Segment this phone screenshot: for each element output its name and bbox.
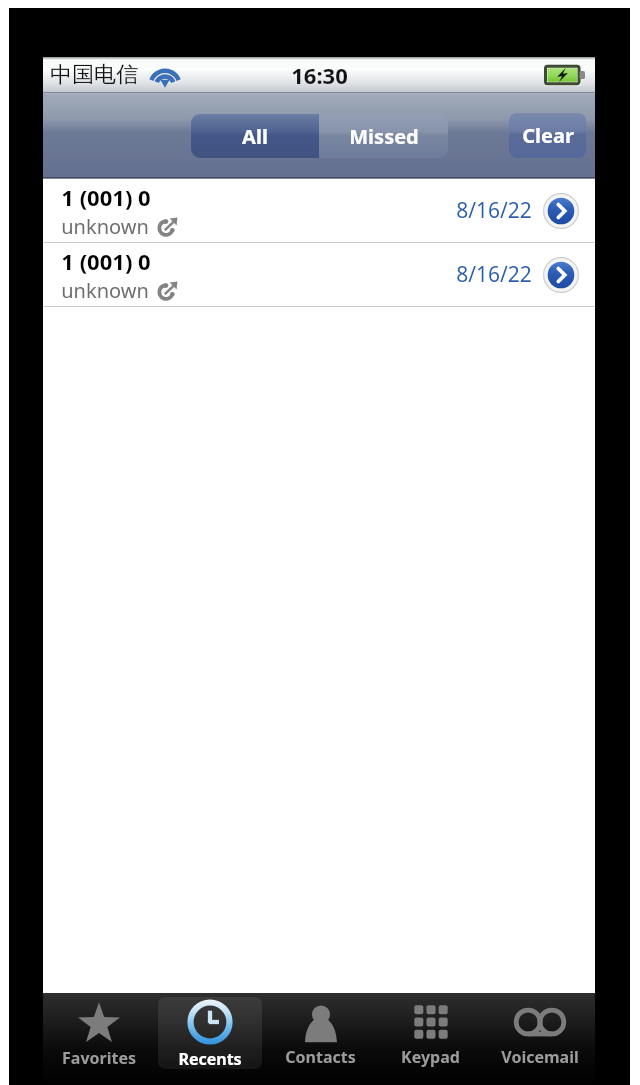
staticText: unknown [61,213,149,240]
button[interactable]: Favorites [43,993,154,1085]
button[interactable]: Clear [509,113,586,158]
button[interactable]: 1 (001) 0 [43,243,595,307]
staticText: 16:30 [291,60,348,90]
staticText: 1 (001) 0 [61,246,151,276]
button[interactable]: Missed [319,114,448,158]
button[interactable]: All [191,114,319,158]
staticText: 8/16/22 [456,196,532,225]
staticText: unknown [61,277,149,304]
button[interactable]: Recents [154,993,265,1085]
staticText: Recents [178,1048,242,1070]
button[interactable]: More info [543,257,579,293]
button[interactable]: Keypad [375,993,485,1085]
staticText: Voicemail [501,1046,579,1068]
button[interactable]: More info [543,193,579,229]
staticText: All [242,123,268,150]
button[interactable]: Contacts [265,993,375,1085]
staticText: Favorites [62,1047,136,1069]
staticText: Keypad [401,1046,460,1068]
staticText: Clear [522,122,574,149]
staticText: Missed [349,123,419,150]
staticText: 中国电信 [50,61,138,89]
staticText: 8/16/22 [456,260,532,289]
button[interactable]: Voicemail [485,993,595,1085]
button[interactable]: 1 (001) 0 [43,179,595,243]
staticText: 1 (001) 0 [61,182,151,212]
staticText: Contacts [285,1046,356,1068]
